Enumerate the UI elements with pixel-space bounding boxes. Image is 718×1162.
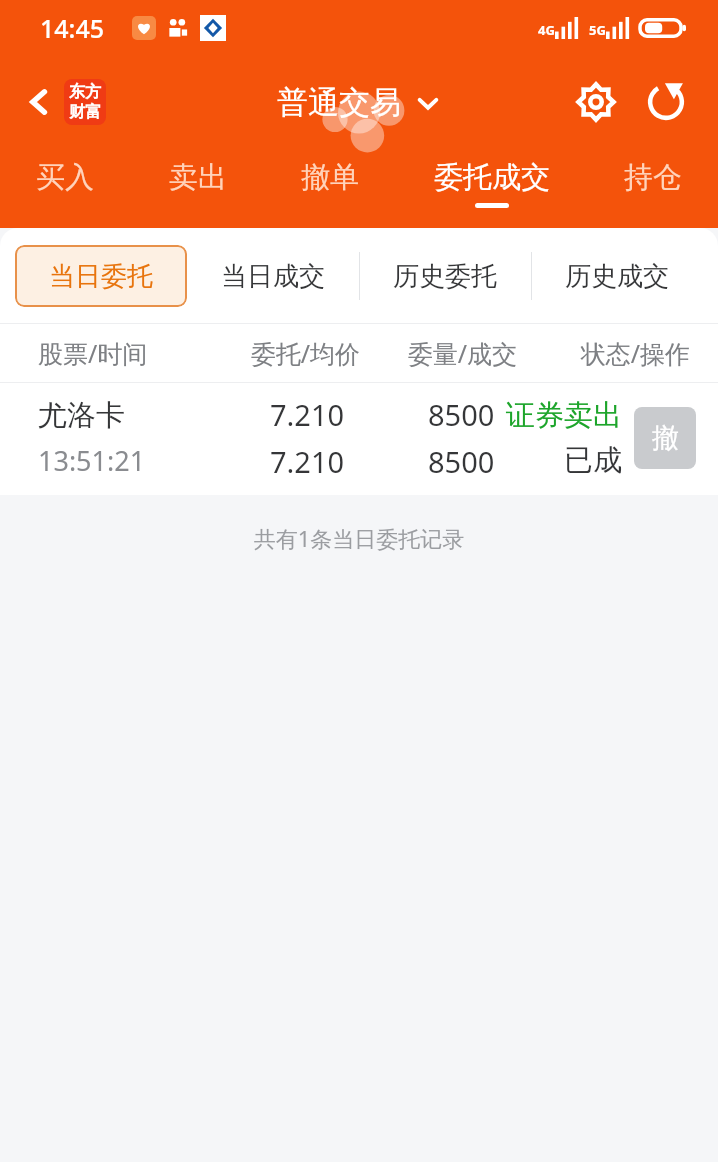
staticText: 13:51:21: [38, 442, 146, 479]
staticText: 4G: [538, 21, 555, 39]
button[interactable]: 普通交易: [271, 77, 447, 128]
button[interactable]: 历史委托: [359, 245, 531, 307]
staticText: 状态/操作: [517, 336, 690, 370]
staticText: 尤洛卡: [38, 397, 125, 434]
button[interactable]: 委托成交: [424, 153, 560, 214]
staticText: 5G: [589, 21, 606, 39]
button[interactable]: 买入: [26, 153, 104, 214]
staticText: 14:45: [40, 11, 105, 45]
staticText: 持仓: [624, 159, 682, 196]
button[interactable]: 持仓: [614, 153, 692, 214]
button[interactable]: 当日成交: [187, 245, 359, 307]
staticText: 委托成交: [434, 159, 550, 196]
button[interactable]: 尤洛卡: [0, 383, 718, 481]
button[interactable]: Refresh: [640, 76, 692, 128]
staticText: 普通交易: [277, 83, 401, 122]
staticText: 共有1条当日委托记录: [0, 523, 718, 553]
staticText: 历史委托: [393, 260, 497, 293]
staticText: 撤单: [301, 159, 359, 196]
staticText: 卖出: [169, 159, 227, 196]
button[interactable]: 撤: [634, 407, 696, 469]
staticText: 证券卖出: [506, 397, 622, 434]
staticText: 8500: [428, 395, 495, 434]
staticText: 历史成交: [565, 260, 669, 293]
staticText: 当日成交: [221, 260, 325, 293]
button[interactable]: 撤单: [291, 153, 369, 214]
button[interactable]: 历史成交: [531, 245, 703, 307]
button[interactable]: 当日委托: [15, 245, 187, 307]
button[interactable]: 卖出: [159, 153, 237, 214]
staticText: 委量/成交: [360, 336, 517, 370]
staticText: 7.210: [270, 395, 345, 434]
button[interactable]: Settings: [570, 76, 622, 128]
staticText: 委托/均价: [203, 336, 360, 370]
staticText: 买入: [36, 159, 94, 196]
staticText: 当日委托: [49, 260, 153, 293]
staticText: 已成: [564, 442, 622, 479]
staticText: 撤: [652, 421, 679, 455]
staticText: 股票/时间: [38, 336, 203, 370]
staticText: 7.210: [270, 442, 345, 481]
staticText: 8500: [428, 442, 495, 481]
staticText: 东方: [69, 82, 101, 102]
button[interactable]: Back: [16, 73, 112, 131]
staticText: 财富: [69, 102, 101, 122]
